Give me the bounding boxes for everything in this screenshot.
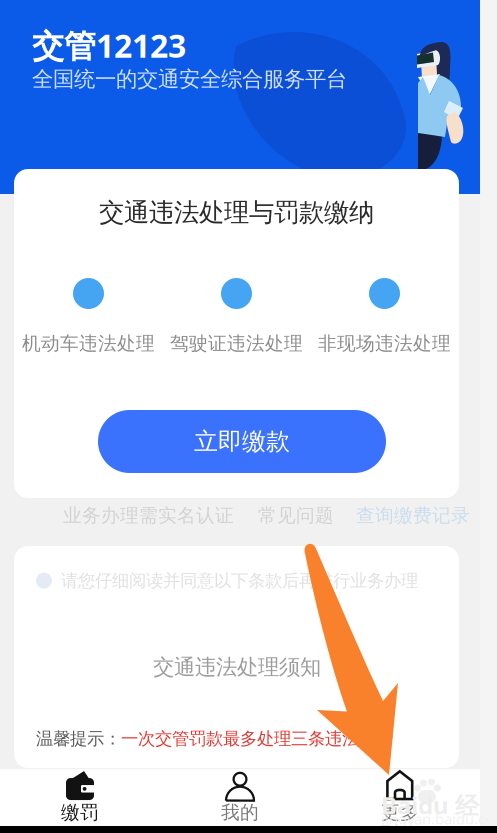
staticText: 机动车违法处理 bbox=[22, 332, 155, 355]
button[interactable]: 更多 bbox=[320, 769, 480, 826]
staticText: 业务办理需实名认证 bbox=[63, 504, 234, 527]
staticText: 交通违法处理与罚款缴纳 bbox=[99, 197, 374, 228]
button[interactable]: 查询缴费记录 bbox=[356, 504, 470, 527]
staticText: 交管12123 bbox=[32, 24, 186, 66]
staticText: 温馨提示： bbox=[36, 728, 121, 749]
staticText: 查询缴费记录 bbox=[356, 504, 470, 527]
staticText: 交通违法处理须知 bbox=[153, 654, 321, 680]
staticText: 更多 bbox=[381, 801, 419, 824]
staticText: Baidu 经验 bbox=[381, 789, 479, 833]
staticText: 一次交管罚款最多处理三条违法记录 bbox=[121, 728, 393, 749]
button[interactable]: 机动车违法处理 bbox=[14, 273, 162, 359]
staticText: 全国统一的交通安全综合服务平台 bbox=[32, 66, 347, 92]
staticText: 请您仔细阅读并同意以下条款后再进行业务办理 bbox=[61, 570, 418, 591]
button[interactable]: 我的 bbox=[160, 769, 320, 826]
staticText: 立即缴款 bbox=[194, 427, 290, 456]
button[interactable]: 驾驶证违法处理 bbox=[162, 273, 310, 359]
staticText: 缴罚 bbox=[61, 801, 99, 824]
staticText: 我的 bbox=[221, 801, 259, 824]
button[interactable]: 立即缴款 bbox=[98, 410, 386, 473]
staticText: 驾驶证违法处理 bbox=[170, 332, 303, 355]
button[interactable]: 非现场违法处理 bbox=[310, 273, 458, 359]
button[interactable]: 缴罚 bbox=[0, 769, 160, 826]
staticText: 常见问题 bbox=[258, 504, 334, 527]
staticText: jingyan.baidu.com bbox=[381, 809, 490, 833]
staticText: 非现场违法处理 bbox=[318, 332, 451, 355]
